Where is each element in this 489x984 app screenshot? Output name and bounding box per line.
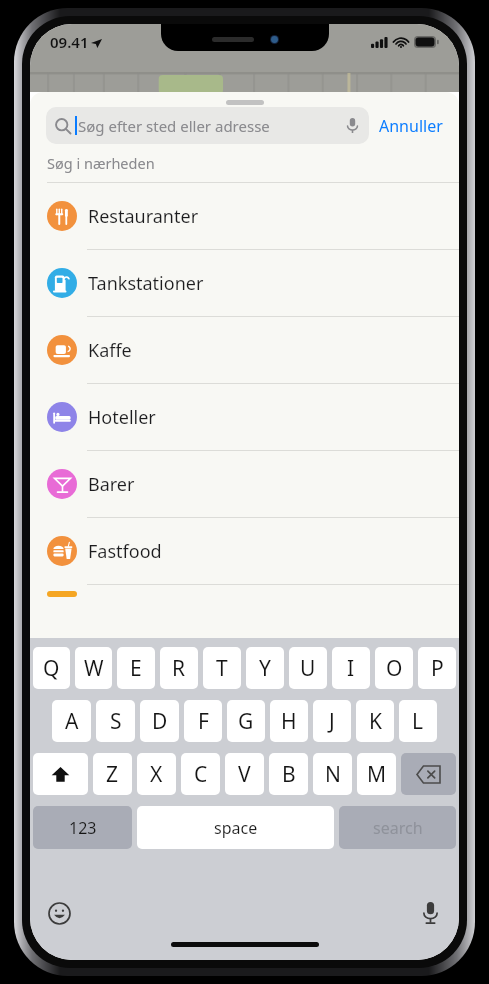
- button[interactable]: Restauranter: [30, 183, 459, 249]
- staticText: Q: [43, 654, 60, 683]
- button[interactable]: I: [332, 647, 370, 689]
- button[interactable]: E: [117, 647, 155, 689]
- button[interactable]: P: [418, 647, 456, 689]
- button[interactable]: B: [269, 753, 308, 795]
- button[interactable]: Annuller: [379, 109, 443, 143]
- staticText: G: [238, 707, 254, 736]
- button[interactable]: Kaffe: [30, 317, 459, 383]
- button[interactable]: Dictation: [417, 900, 443, 926]
- staticText: Søg efter sted eller adresse: [78, 116, 345, 136]
- button[interactable]: Backspace: [401, 753, 456, 795]
- staticText: R: [172, 654, 186, 683]
- staticText: L: [412, 707, 424, 736]
- button[interactable]: Hoteller: [30, 384, 459, 450]
- staticText: B: [282, 760, 296, 789]
- button[interactable]: J: [313, 700, 351, 742]
- button[interactable]: Y: [246, 647, 284, 689]
- button[interactable]: F: [184, 700, 222, 742]
- button[interactable]: C: [181, 753, 220, 795]
- button[interactable]: space: [137, 806, 334, 849]
- staticText: Hoteller: [88, 405, 156, 430]
- staticText: Kaffe: [88, 338, 132, 363]
- staticText: V: [238, 760, 251, 789]
- staticText: 123: [69, 817, 97, 839]
- button[interactable]: X: [137, 753, 176, 795]
- button[interactable]: W: [75, 647, 112, 689]
- staticText: F: [198, 707, 209, 736]
- button[interactable]: Barer: [30, 451, 459, 517]
- staticText: Restauranter: [88, 204, 199, 229]
- staticText: K: [369, 707, 382, 736]
- button[interactable]: Tankstationer: [30, 250, 459, 316]
- button[interactable]: R: [160, 647, 198, 689]
- button[interactable]: Fastfood: [30, 518, 459, 584]
- staticText: space: [214, 817, 258, 839]
- staticText: Tankstationer: [88, 271, 204, 296]
- button[interactable]: 123: [33, 806, 132, 849]
- button[interactable]: T: [203, 647, 241, 689]
- staticText: A: [65, 707, 79, 736]
- button[interactable]: V: [225, 753, 264, 795]
- button[interactable]: S: [96, 700, 135, 742]
- staticText: T: [216, 654, 228, 683]
- staticText: U: [300, 654, 316, 683]
- staticText: 09.41: [50, 32, 89, 52]
- button[interactable]: G: [227, 700, 265, 742]
- staticText: I: [347, 654, 355, 683]
- staticText: Z: [106, 760, 119, 789]
- staticText: Søg i nærheden: [47, 153, 155, 173]
- staticText: Y: [259, 654, 271, 683]
- button[interactable]: K: [356, 700, 394, 742]
- button[interactable]: U: [289, 647, 327, 689]
- staticText: search: [373, 817, 423, 839]
- staticText: S: [110, 707, 122, 736]
- staticText: E: [130, 654, 142, 683]
- staticText: Barer: [88, 472, 135, 497]
- button[interactable]: N: [313, 753, 352, 795]
- staticText: M: [367, 760, 387, 789]
- staticText: C: [194, 760, 208, 789]
- button[interactable]: Dictate: [345, 118, 360, 133]
- button[interactable]: Søg efter sted eller adresse: [46, 107, 369, 144]
- staticText: Fastfood: [88, 539, 162, 564]
- staticText: Annuller: [379, 115, 443, 137]
- button[interactable]: L: [399, 700, 437, 742]
- button[interactable]: M: [357, 753, 396, 795]
- staticText: X: [150, 760, 163, 789]
- button[interactable]: Z: [93, 753, 132, 795]
- staticText: O: [386, 654, 403, 683]
- staticText: H: [281, 707, 297, 736]
- button[interactable]: A: [52, 700, 91, 742]
- staticText: P: [431, 654, 444, 683]
- button[interactable]: Shift: [33, 753, 88, 795]
- button[interactable]: Emoji: [46, 900, 72, 926]
- button[interactable]: D: [140, 700, 179, 742]
- staticText: J: [329, 707, 335, 736]
- button[interactable]: H: [270, 700, 308, 742]
- button[interactable]: O: [375, 647, 413, 689]
- staticText: D: [152, 707, 168, 736]
- staticText: W: [84, 654, 104, 683]
- staticText: N: [325, 760, 341, 789]
- button[interactable]: Q: [33, 647, 70, 689]
- button[interactable]: search: [339, 806, 456, 849]
